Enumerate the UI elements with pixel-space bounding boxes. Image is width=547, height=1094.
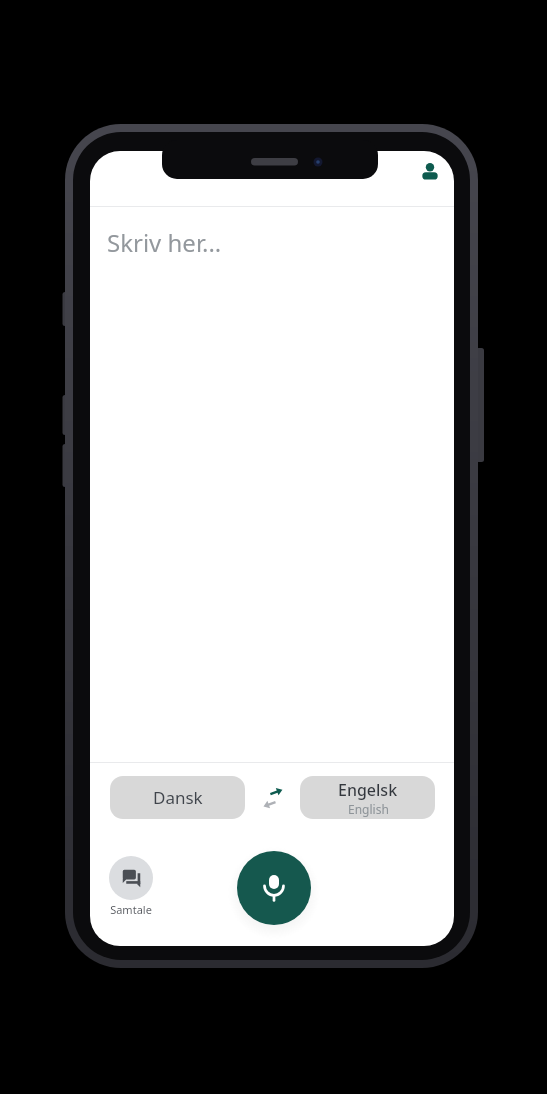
staticText: Engelsk — [338, 779, 398, 801]
button[interactable]: Samtale — [102, 856, 160, 920]
staticText: Skriv her... — [107, 226, 222, 259]
button[interactable]: Skriv her... — [90, 207, 454, 762]
button[interactable]: Dansk — [110, 776, 245, 819]
button[interactable]: Engelsk — [300, 776, 435, 819]
staticText: Samtale — [110, 902, 152, 917]
button[interactable] — [251, 776, 295, 820]
button[interactable] — [237, 851, 311, 925]
staticText: Dansk — [153, 786, 203, 809]
staticText: English — [348, 801, 389, 817]
button[interactable] — [418, 158, 442, 182]
